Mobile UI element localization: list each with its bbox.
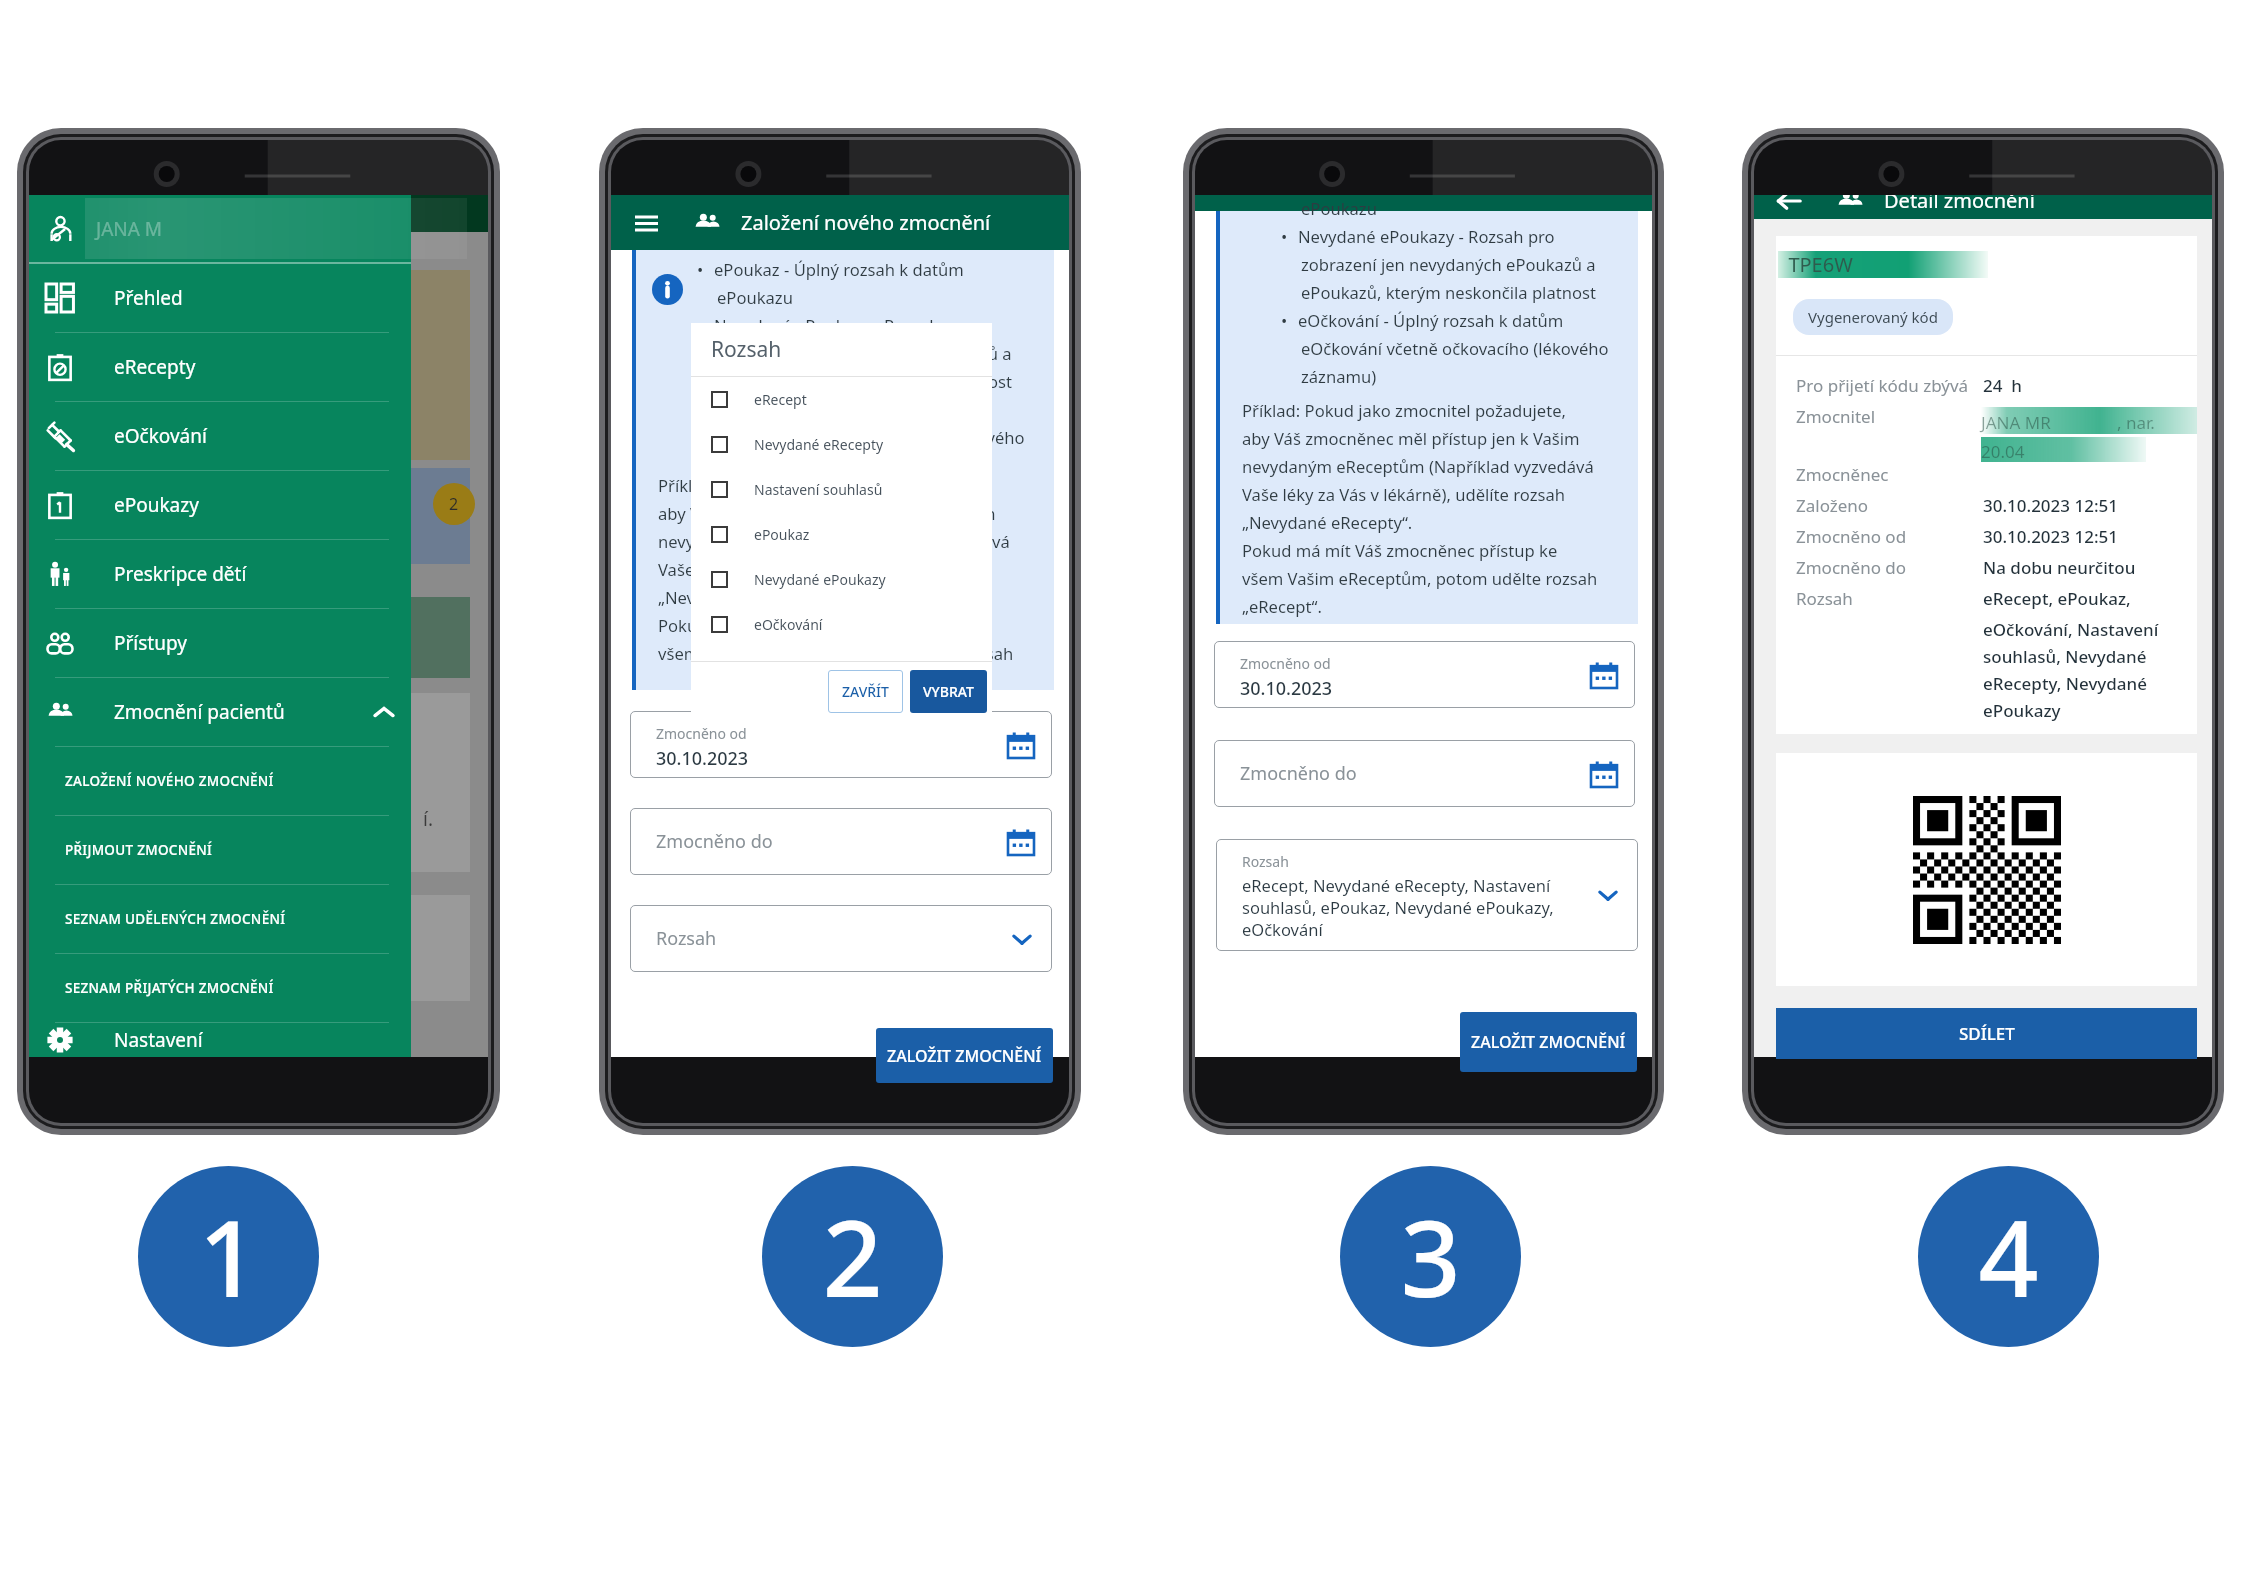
button[interactable]: Rozsah: [630, 905, 1052, 972]
staticText: ZALOŽENÍ NOVÉHO ZMOCNĚNÍ: [65, 772, 274, 790]
button[interactable]: SEZNAM UDĚLENÝCH ZMOCNĚNÍ: [29, 885, 411, 954]
staticText: všem Vašim eReceptům, potom udělte rozsa…: [658, 642, 1014, 665]
staticText: eOčkování - Úplný rozsah k datům: [1298, 309, 1564, 332]
button[interactable]: Vygenerovaný kód: [1808, 299, 1938, 335]
button[interactable]: eOčkování: [29, 402, 411, 471]
staticText: Založeno: [1796, 494, 1983, 517]
button[interactable]: Back: [1774, 195, 1804, 216]
button[interactable]: Menu: [631, 208, 661, 238]
staticText: eOčkování: [1242, 918, 1323, 940]
staticText: 2: [449, 493, 459, 515]
staticText: všem Vašim eReceptům, potom udělte rozsa…: [1242, 567, 1598, 590]
staticText: ePoukazů, kterým neskončila platnost: [1301, 281, 1596, 304]
staticText: Přístupy: [114, 630, 187, 656]
staticText: Zmocněno do: [1796, 556, 1983, 579]
staticText: Příklad: Pokud jako zmocnitel požadujete…: [1242, 399, 1566, 422]
button[interactable]: 1: [138, 1166, 319, 1347]
staticText: Nevydané ePoukazy: [754, 570, 886, 589]
button[interactable]: eRecepty: [29, 333, 411, 402]
staticText: •: [697, 258, 704, 281]
staticText: SEZNAM PŘIJATÝCH ZMOCNĚNÍ: [65, 979, 274, 997]
staticText: 2: [822, 1185, 883, 1328]
button[interactable]: Zmocněno od: [1214, 641, 1635, 708]
button[interactable]: ZALOŽIT ZMOCNĚNÍ: [876, 1028, 1053, 1083]
staticText: Pro přijetí kódu zbývá: [1796, 374, 1983, 397]
button[interactable]: 2: [762, 1166, 943, 1347]
staticText: PŘIJMOUT ZMOCNĚNÍ: [65, 841, 213, 859]
staticText: souhlasů, ePoukaz, Nevydané ePoukazy,: [1242, 896, 1554, 918]
staticText: ePoukazy: [114, 492, 199, 518]
staticText: ePoukaz: [754, 525, 810, 544]
button[interactable]: Preskripce dětí: [29, 540, 411, 609]
staticText: SDÍLET: [1959, 1022, 2015, 1045]
staticText: eOčkování včetně očkovacího (lékového: [717, 426, 1025, 449]
staticText: Zmocněno od: [1240, 654, 1331, 673]
button[interactable]: SDÍLET: [1776, 1008, 2197, 1059]
button[interactable]: ePoukazy: [29, 471, 411, 540]
staticText: Založení nového zmocnění: [741, 209, 991, 236]
button[interactable]: Zmocněno do: [1214, 740, 1635, 807]
staticText: Vaše léky za Vás v lékárně), udělíte roz…: [1242, 483, 1565, 506]
staticText: Pokud má mít Váš zmocněnec přístup ke: [1242, 539, 1558, 562]
button[interactable]: Přístupy: [29, 609, 411, 678]
button[interactable]: ZAVŘÍT: [828, 670, 903, 713]
staticText: Nastavení souhlasů: [754, 480, 883, 499]
button[interactable]: Nastavení souhlasů: [711, 467, 992, 512]
staticText: Rozsah: [711, 335, 782, 364]
staticText: eOčkování včetně očkovacího (lékového: [1301, 337, 1609, 360]
staticText: SEZNAM UDĚLENÝCH ZMOCNĚNÍ: [65, 910, 286, 928]
button[interactable]: Nastavení: [29, 1023, 411, 1057]
button[interactable]: eRecept: [711, 377, 992, 422]
staticText: ePoukazu: [717, 286, 793, 309]
staticText: 30.10.2023 12:51: [1983, 494, 2118, 517]
button[interactable]: Nevydané ePoukazy: [711, 557, 992, 602]
staticText: ePoukazů, kterým neskončila platnost: [717, 370, 1012, 393]
staticText: Vygenerovaný kód: [1808, 307, 1938, 327]
staticText: 30.10.2023: [656, 746, 749, 771]
staticText: Preskripce dětí: [114, 561, 247, 587]
staticText: eRecept: [754, 390, 807, 409]
button[interactable]: Zmocněno od: [630, 711, 1052, 778]
button[interactable]: 3: [1340, 1166, 1521, 1347]
staticText: nevydaným eReceptům (Například vyzvedává: [1242, 455, 1594, 478]
staticText: zobrazení jen nevydaných ePoukazů a: [717, 342, 1012, 365]
button[interactable]: ePoukaz: [711, 512, 992, 557]
staticText: eOčkování, Nastavení: [1983, 618, 2159, 641]
button[interactable]: JANA M: [29, 195, 411, 262]
staticText: Přehled: [114, 285, 183, 311]
staticText: •: [1281, 309, 1288, 332]
button[interactable]: Zmocnění pacientů: [29, 678, 411, 747]
button[interactable]: VYBRAT: [910, 670, 987, 713]
staticText: záznamu): [1301, 365, 1377, 388]
button[interactable]: Přehled: [29, 264, 411, 333]
staticText: 4: [1978, 1185, 2039, 1328]
staticText: aby Váš zmocněnec měl přístup jen k Vaši…: [1242, 427, 1580, 450]
staticText: eRecept, ePoukaz,: [1983, 587, 2131, 610]
staticText: ZALOŽIT ZMOCNĚNÍ: [887, 1045, 1042, 1067]
staticText: 3: [1400, 1185, 1461, 1328]
button[interactable]: Nevydané eRecepty: [711, 422, 992, 467]
staticText: Zmocněno od: [656, 724, 747, 743]
staticText: eRecepty: [114, 354, 196, 380]
button[interactable]: Rozsah: [1216, 839, 1638, 951]
staticText: ZALOŽIT ZMOCNĚNÍ: [1471, 1031, 1626, 1053]
staticText: JANA MR , nar.: [1981, 411, 2155, 434]
button[interactable]: 4: [1918, 1166, 2099, 1347]
button[interactable]: eOčkování: [711, 602, 992, 647]
staticText: souhlasů, Nevydané: [1983, 645, 2147, 668]
staticText: Zmocněnec: [1796, 463, 1983, 486]
button[interactable]: PŘIJMOUT ZMOCNĚNÍ: [29, 816, 411, 885]
staticText: Zmocnění pacientů: [114, 699, 285, 725]
staticText: •: [697, 314, 704, 337]
button[interactable]: SEZNAM PŘIJATÝCH ZMOCNĚNÍ: [29, 954, 411, 1023]
staticText: •: [1281, 225, 1288, 248]
staticText: TPE6W: [1778, 251, 1853, 278]
button[interactable]: ZALOŽIT ZMOCNĚNÍ: [1460, 1012, 1637, 1072]
staticText: nevydaným eReceptům (Například vyzvedává: [658, 530, 1010, 553]
button[interactable]: ZALOŽENÍ NOVÉHO ZMOCNĚNÍ: [29, 747, 411, 816]
staticText: 30.10.2023: [1240, 676, 1333, 701]
button[interactable]: Zmocněno do: [630, 808, 1052, 875]
staticText: Zmocněno do: [1240, 761, 1357, 786]
